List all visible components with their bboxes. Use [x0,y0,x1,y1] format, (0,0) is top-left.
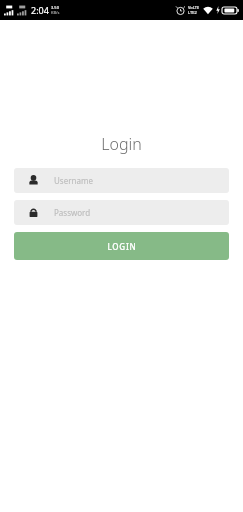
staticText: Login [101,133,142,155]
staticText: Username [54,175,93,186]
staticText: 2:04 [31,4,49,16]
staticText: 3.50 [51,5,59,10]
button[interactable]: Password [14,200,229,225]
button[interactable]: Username [14,168,229,193]
staticText: LTE2 [188,10,197,15]
staticText: KB/s [51,10,60,15]
button[interactable]: LOGIN [14,232,229,260]
staticText: Password [54,207,91,218]
staticText: VoLTE [188,5,200,10]
staticText: LOGIN [107,241,137,252]
